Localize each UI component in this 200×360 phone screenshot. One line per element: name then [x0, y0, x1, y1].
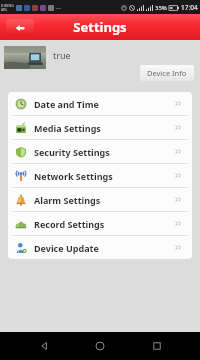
button[interactable]: Network Settings: [8, 164, 192, 187]
staticText: Date and Time: [34, 98, 174, 110]
staticText: ···: [56, 4, 61, 12]
button[interactable]: Alarm Settings: [8, 188, 192, 211]
staticText: Record Settings: [34, 218, 174, 230]
staticText: 17:04: [181, 3, 198, 12]
button[interactable]: Media Settings: [8, 116, 192, 139]
staticText: Security Settings: [34, 146, 174, 158]
staticText: 35%: [155, 4, 167, 12]
button[interactable]: Device Update: [8, 236, 192, 259]
button[interactable]: Device Info: [140, 65, 194, 81]
button[interactable]: Recent apps: [144, 333, 170, 359]
staticText: Device Info: [147, 68, 187, 78]
button[interactable]: Record Settings: [8, 212, 192, 235]
staticText: IHDING ARL: [1, 3, 14, 12]
button[interactable]: Home: [87, 333, 113, 359]
button[interactable]: Back: [6, 19, 34, 36]
button[interactable]: Back: [31, 333, 57, 359]
staticText: Settings: [73, 18, 127, 36]
button[interactable]: Date and Time: [8, 92, 192, 115]
staticText: Alarm Settings: [34, 194, 174, 206]
staticText: Media Settings: [34, 122, 174, 134]
button[interactable]: Security Settings: [8, 140, 192, 163]
staticText: true: [53, 49, 71, 61]
staticText: Network Settings: [34, 170, 174, 182]
staticText: Device Update: [34, 242, 174, 254]
